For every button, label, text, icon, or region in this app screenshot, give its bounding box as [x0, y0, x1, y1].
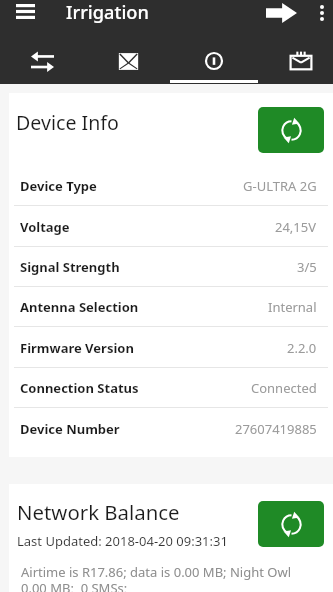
button[interactable]: Device Number [9, 408, 333, 449]
button[interactable]: Antenna Selection [9, 287, 333, 327]
staticText: Network Balance [17, 498, 180, 526]
staticText: Connection Status [20, 379, 139, 397]
button[interactable]: Inbox [257, 26, 332, 84]
staticText: Internal [268, 298, 317, 316]
staticText: Device Type [20, 177, 97, 195]
staticText: Firmware Version [20, 339, 134, 357]
staticText: Voltage [20, 218, 70, 236]
staticText: 2.2.0 [287, 339, 317, 357]
button[interactable]: Send [266, 0, 298, 26]
button[interactable]: Transfer [0, 26, 85, 84]
staticText: 3/5 [297, 258, 317, 276]
staticText: 24,15V [275, 218, 317, 236]
staticText: Last Updated: 2018-04-20 09:31:31 [17, 532, 228, 550]
staticText: Connected [251, 379, 317, 397]
staticText: Device Info [16, 109, 119, 136]
button[interactable]: Voltage [9, 206, 333, 247]
button[interactable]: Device Type [9, 166, 333, 206]
staticText: Device Number [20, 420, 120, 438]
staticText: G-ULTRA 2G [243, 177, 317, 195]
button[interactable]: Menu [10, 0, 40, 24]
staticText: Signal Strength [20, 258, 120, 276]
staticText: 27607419885 [235, 420, 317, 438]
button[interactable]: Device info [171, 26, 257, 84]
button[interactable]: Refresh [258, 501, 324, 547]
staticText: Airtime is R17.86; data is 0.00 MB; Nigh… [21, 563, 302, 592]
button[interactable]: Firmware Version [9, 327, 333, 368]
staticText: Irrigation [66, 0, 149, 25]
button[interactable]: Connection Status [9, 368, 333, 408]
button[interactable]: Refresh [258, 107, 324, 153]
button[interactable]: Signal Strength [9, 247, 333, 287]
staticText: Antenna Selection [20, 298, 139, 316]
button[interactable]: Messages [85, 26, 171, 84]
button[interactable]: More options [311, 0, 333, 26]
